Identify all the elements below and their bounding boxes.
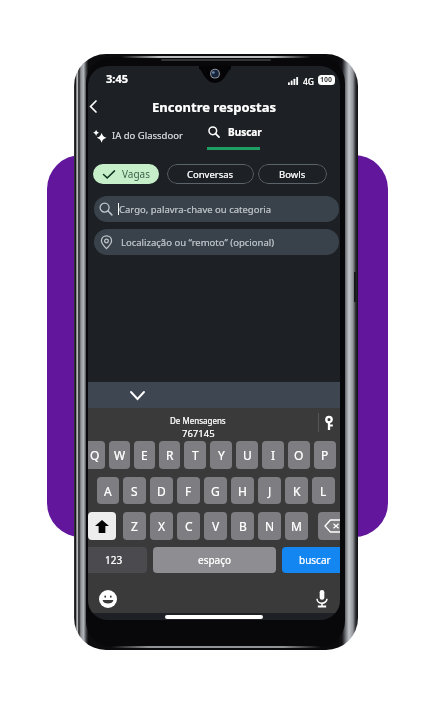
staticText: S: [131, 483, 138, 499]
staticText: IA do Glassdoor: [112, 129, 183, 142]
staticText: Conversas: [187, 168, 234, 181]
button[interactable]: O: [288, 441, 310, 469]
button[interactable]: G: [204, 477, 227, 504]
staticText: O: [294, 447, 304, 463]
button[interactable]: Buscar: [205, 122, 263, 152]
button[interactable]: S: [123, 477, 146, 504]
button[interactable]: W: [109, 441, 130, 469]
staticText: 3:45: [106, 71, 128, 86]
button[interactable]: R: [159, 441, 180, 469]
staticText: 100: [320, 75, 333, 85]
button[interactable]: buscar: [282, 547, 340, 573]
button[interactable]: N: [258, 512, 281, 540]
button[interactable]: Shift: [88, 512, 116, 540]
staticText: N: [265, 518, 275, 534]
button[interactable]: I: [262, 441, 284, 469]
button[interactable]: Z: [123, 512, 146, 540]
staticText: I: [271, 447, 276, 463]
button[interactable]: Bowls: [258, 164, 327, 184]
staticText: Vagas: [122, 167, 150, 181]
staticText: D: [157, 483, 166, 499]
button[interactable]: E: [134, 441, 155, 469]
staticText: R: [166, 447, 174, 463]
button[interactable]: X: [150, 512, 173, 540]
button[interactable]: Senha: [322, 416, 336, 430]
button[interactable]: Emoji: [99, 590, 117, 608]
staticText: Buscar: [228, 125, 262, 139]
button[interactable]: C: [177, 512, 200, 540]
button[interactable]: M: [285, 512, 308, 540]
staticText: X: [158, 518, 166, 534]
staticText: buscar: [299, 553, 331, 567]
button[interactable]: IA do Glassdoor: [93, 122, 183, 149]
staticText: E: [141, 447, 148, 463]
staticText: 767145: [182, 427, 215, 440]
button[interactable]: Voltar: [88, 95, 103, 117]
button[interactable]: espaço: [153, 547, 276, 573]
button[interactable]: L: [312, 477, 335, 504]
button[interactable]: H: [231, 477, 254, 504]
button[interactable]: F: [177, 477, 200, 504]
staticText: Localização ou “remoto” (opcional): [121, 236, 275, 249]
staticText: M: [291, 518, 302, 534]
staticText: P: [321, 447, 329, 463]
staticText: Encontre respostas: [152, 98, 277, 116]
button[interactable]: V: [204, 512, 227, 540]
staticText: G: [211, 483, 220, 499]
staticText: C: [185, 518, 193, 534]
button[interactable]: J: [258, 477, 281, 504]
button[interactable]: De Mensagens: [88, 408, 340, 437]
staticText: V: [212, 518, 220, 534]
staticText: T: [192, 447, 199, 463]
staticText: F: [185, 483, 192, 499]
button[interactable]: Cargo, palavra-chave ou categoria: [94, 196, 339, 222]
button[interactable]: Localização ou “remoto” (opcional): [94, 229, 339, 255]
staticText: K: [293, 483, 301, 499]
staticText: U: [243, 447, 252, 463]
button[interactable]: U: [236, 441, 258, 469]
staticText: 123: [105, 553, 123, 567]
button[interactable]: Conversas: [167, 164, 254, 184]
staticText: L: [320, 483, 327, 499]
button[interactable]: K: [285, 477, 308, 504]
staticText: B: [239, 518, 247, 534]
staticText: J: [268, 483, 272, 499]
staticText: espaço: [198, 553, 232, 567]
staticText: H: [238, 483, 247, 499]
button[interactable]: T: [184, 441, 206, 469]
staticText: Z: [131, 518, 138, 534]
button[interactable]: Microfone: [314, 589, 330, 608]
button[interactable]: Q: [88, 441, 105, 469]
staticText: Cargo, palavra-chave ou categoria: [119, 203, 272, 216]
staticText: 4G: [303, 76, 315, 88]
staticText: Bowls: [279, 168, 306, 181]
button[interactable]: 123: [88, 547, 147, 573]
staticText: W: [114, 447, 126, 463]
staticText: A: [104, 483, 112, 499]
button[interactable]: Apagar: [318, 512, 340, 540]
staticText: Q: [90, 447, 100, 463]
button[interactable]: A: [97, 477, 119, 504]
button[interactable]: Vagas: [93, 164, 159, 184]
button[interactable]: P: [314, 441, 336, 469]
staticText: De Mensagens: [170, 415, 226, 426]
staticText: Y: [218, 447, 225, 463]
button[interactable]: Y: [210, 441, 232, 469]
button[interactable]: Fechar teclado: [126, 384, 148, 406]
button[interactable]: B: [231, 512, 254, 540]
button[interactable]: D: [150, 477, 173, 504]
